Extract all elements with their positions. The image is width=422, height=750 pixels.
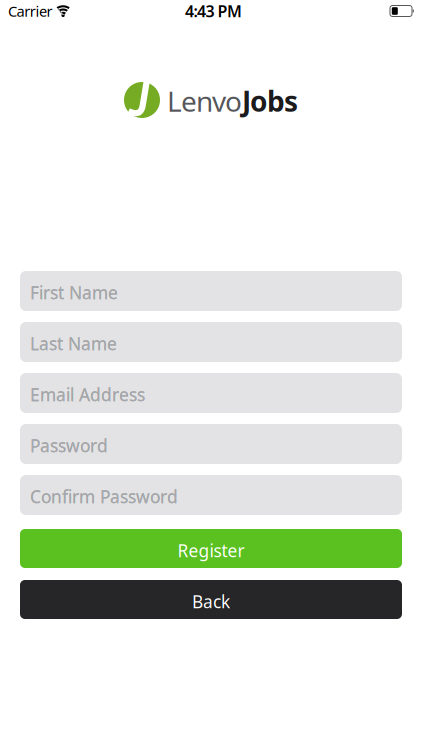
staticText: Password	[30, 434, 108, 457]
textField[interactable]: First Name	[30, 281, 402, 304]
staticText: Last Name	[30, 332, 117, 355]
staticText: Lenvo	[167, 82, 242, 120]
staticText: Last Name	[30, 332, 117, 355]
button[interactable]: Register	[20, 529, 402, 568]
staticText: Confirm Password	[30, 485, 178, 508]
secureTextField[interactable]: Password	[30, 434, 402, 457]
staticText: Back	[192, 590, 230, 613]
staticText: First Name	[30, 281, 118, 304]
staticText: Carrier	[8, 1, 53, 21]
staticText: Password	[30, 434, 108, 457]
secureTextField[interactable]: Confirm Password	[30, 485, 402, 508]
staticText: Register	[177, 539, 244, 562]
button[interactable]: Back	[20, 580, 402, 619]
staticText: Confirm Password	[30, 485, 178, 508]
textField[interactable]: Email Address	[30, 383, 402, 406]
staticText: First Name	[30, 281, 118, 304]
staticText: Email Address	[30, 383, 145, 406]
textField[interactable]: Last Name	[30, 332, 402, 355]
staticText: 4:43 PM	[185, 0, 242, 22]
staticText: Email Address	[30, 383, 145, 406]
staticText: Jobs	[242, 82, 298, 120]
